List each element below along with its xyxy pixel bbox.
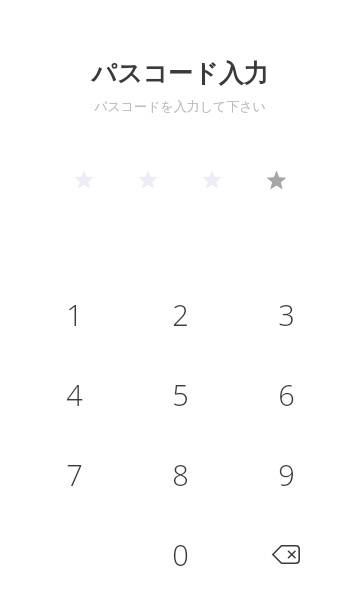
button[interactable]: 9 xyxy=(233,434,339,514)
staticText: 1 xyxy=(66,295,83,334)
button[interactable]: 5 xyxy=(127,354,233,434)
staticText: パスコード入力 xyxy=(91,58,269,89)
staticText: 6 xyxy=(278,375,295,414)
staticText: 5 xyxy=(172,375,189,414)
button[interactable]: 8 xyxy=(127,434,233,514)
button[interactable]: Backspace xyxy=(233,514,339,594)
staticText: パスコードを入力して下さい xyxy=(94,98,266,114)
button[interactable]: 3 xyxy=(233,274,339,354)
button[interactable]: 1 xyxy=(21,274,127,354)
staticText: 8 xyxy=(172,455,189,494)
button[interactable]: 4 xyxy=(21,354,127,434)
staticText: 7 xyxy=(66,455,83,494)
staticText: 4 xyxy=(66,375,83,414)
button[interactable]: 0 xyxy=(127,514,233,594)
staticText: 2 xyxy=(172,295,189,334)
button[interactable]: 6 xyxy=(233,354,339,434)
staticText: 3 xyxy=(278,295,295,334)
staticText: 9 xyxy=(278,455,295,494)
button[interactable]: 2 xyxy=(127,274,233,354)
staticText: 0 xyxy=(172,535,189,574)
button[interactable]: 7 xyxy=(21,434,127,514)
